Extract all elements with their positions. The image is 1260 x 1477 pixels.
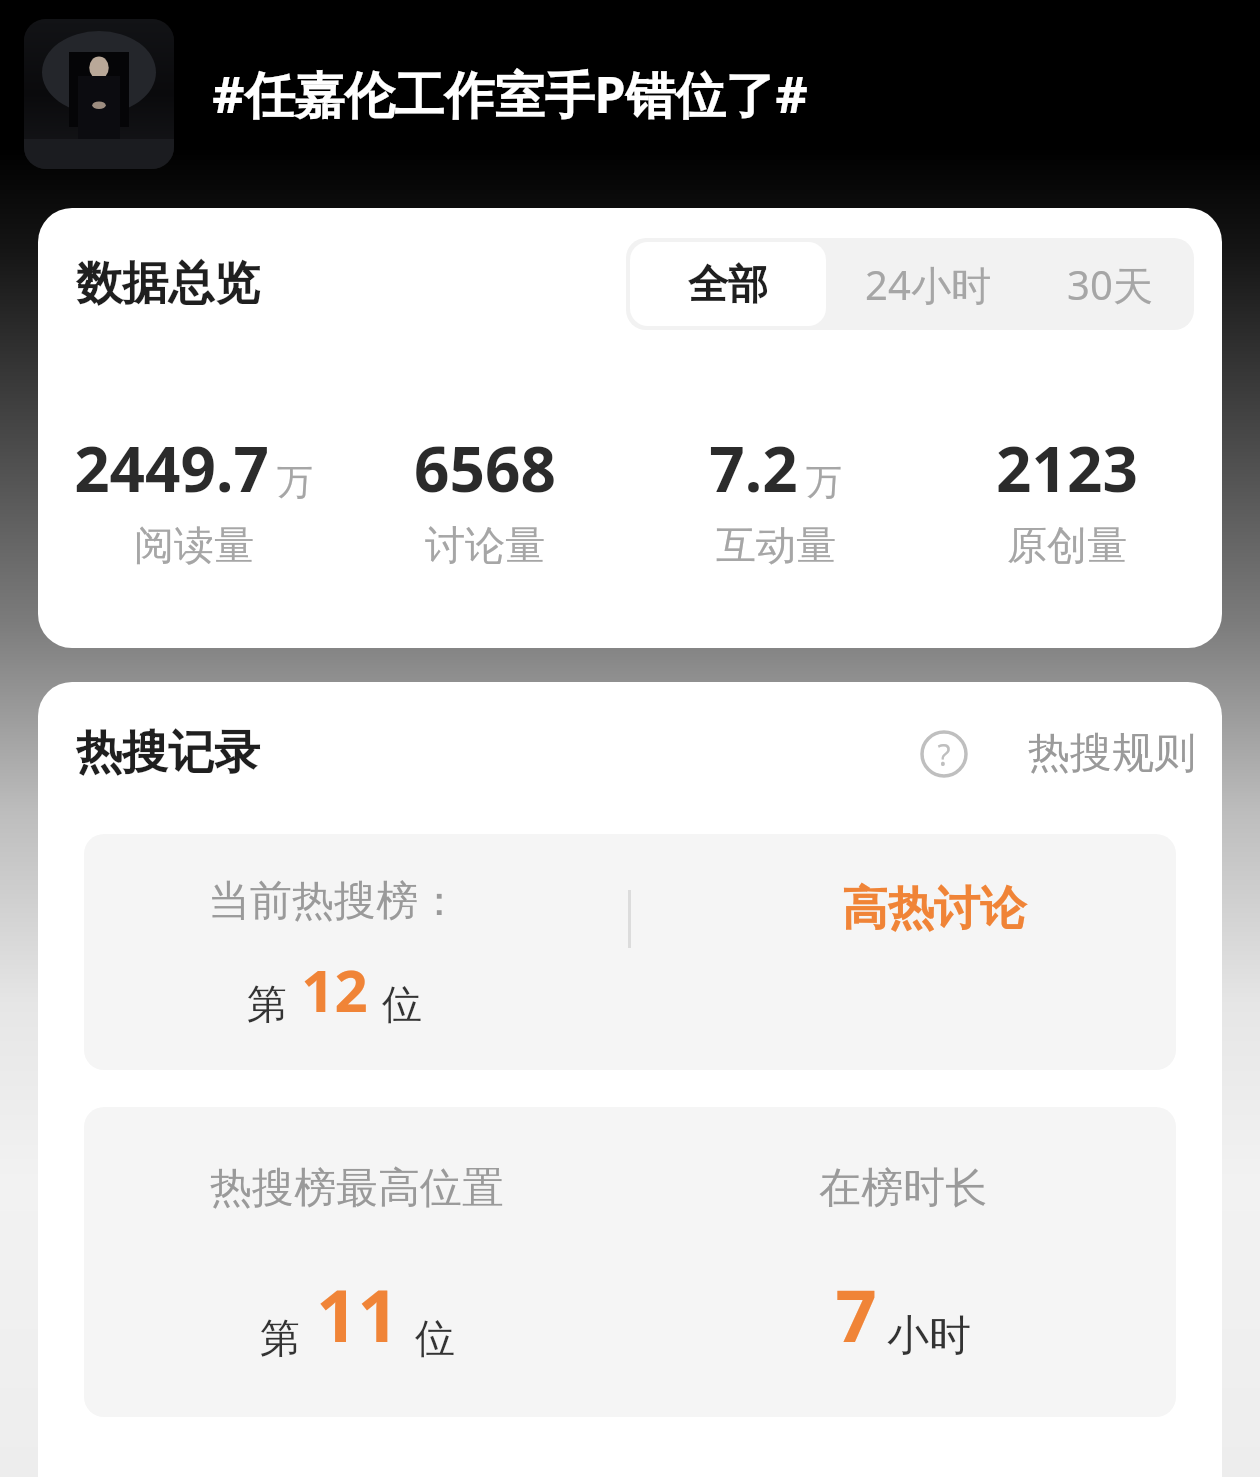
staticText: 互动量 bbox=[716, 520, 836, 570]
button[interactable]: 2449.7 bbox=[48, 426, 339, 570]
staticText: 2123 bbox=[996, 426, 1138, 510]
button[interactable]: 热搜榜最高位置 bbox=[84, 1107, 630, 1417]
staticText: 高热讨论 bbox=[842, 880, 1026, 938]
staticText: 当前热搜榜： bbox=[208, 875, 460, 928]
staticText: 位 bbox=[415, 1313, 455, 1363]
staticText: 24小时 bbox=[865, 257, 991, 312]
button[interactable]: ? bbox=[920, 727, 1196, 780]
button[interactable]: 全部 bbox=[630, 242, 826, 326]
staticText: 11 bbox=[316, 1265, 399, 1363]
staticText: 30天 bbox=[1067, 257, 1153, 312]
staticText: #任嘉伦工作室手P错位了# bbox=[212, 60, 808, 128]
staticText: 原创量 bbox=[1007, 520, 1127, 570]
staticText: 万 bbox=[806, 459, 842, 504]
button[interactable]: 30天 bbox=[1026, 238, 1194, 330]
staticText: 7.2 bbox=[709, 426, 798, 510]
button[interactable]: 当前热搜榜： bbox=[84, 834, 1176, 1070]
staticText: 万 bbox=[277, 459, 313, 504]
staticText: 2449.7 bbox=[74, 426, 269, 510]
staticText: 讨论量 bbox=[425, 520, 545, 570]
staticText: 位 bbox=[382, 979, 422, 1029]
staticText: 12 bbox=[301, 950, 368, 1029]
staticText: 数据总览 bbox=[76, 255, 260, 313]
button[interactable]: 2123 bbox=[921, 426, 1212, 570]
staticText: 第 bbox=[247, 979, 287, 1029]
staticText: ? bbox=[937, 734, 951, 775]
staticText: 全部 bbox=[688, 259, 768, 309]
staticText: 在榜时长 bbox=[819, 1162, 987, 1215]
button[interactable]: 在榜时长 bbox=[630, 1107, 1176, 1417]
staticText: 热搜榜最高位置 bbox=[210, 1162, 504, 1215]
staticText: 热搜规则 bbox=[1028, 727, 1196, 780]
button[interactable]: 24小时 bbox=[830, 238, 1026, 330]
button[interactable]: 7.2 bbox=[630, 426, 921, 570]
staticText: 7 bbox=[835, 1265, 877, 1363]
button[interactable]: Topic image bbox=[24, 19, 174, 169]
staticText: 阅读量 bbox=[134, 520, 254, 570]
staticText: 小时 bbox=[887, 1310, 971, 1363]
staticText: 热搜记录 bbox=[76, 724, 260, 782]
staticText: 6568 bbox=[414, 426, 556, 510]
button[interactable]: 6568 bbox=[339, 426, 630, 570]
staticText: 第 bbox=[260, 1313, 300, 1363]
